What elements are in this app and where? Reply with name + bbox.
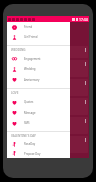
staticText: Friend: [24, 25, 33, 29]
staticText: because of who: [10, 67, 35, 72]
staticText: Anniversary: [24, 78, 40, 82]
staticText: Love is friendship: [10, 48, 38, 53]
staticText: VALENTINE'S DAY: [11, 134, 36, 138]
staticText: Engagement: [24, 57, 41, 61]
button[interactable]: Engagement: [7, 53, 70, 64]
staticText: SMS: [24, 121, 30, 125]
button[interactable]: Message: [7, 107, 70, 118]
staticText: like love, but: [10, 143, 31, 148]
staticText: in love when: [10, 86, 30, 91]
button[interactable]: Love is friendship: [8, 46, 88, 58]
button[interactable]: I still feel your: [8, 98, 88, 115]
staticText: 17:34: [79, 17, 88, 22]
staticText: I wish you: [10, 119, 27, 124]
button[interactable]: Girl Friend: [7, 32, 70, 42]
staticText: happiness: [10, 124, 27, 129]
button[interactable]: I wish you: [8, 117, 88, 134]
button[interactable]: RoseDay: [7, 139, 70, 149]
staticText: I still feel your: [10, 100, 33, 105]
staticText: LOVE: [11, 91, 19, 95]
staticText: Message: [24, 111, 36, 115]
staticText: Wedding: [24, 67, 36, 71]
staticText: Propose Day: [24, 152, 41, 156]
button[interactable]: Propose Day: [7, 149, 70, 158]
staticText: Quotes: [24, 100, 34, 104]
staticText: You know you're: [10, 81, 36, 86]
button[interactable]: There is no fabric: [8, 136, 88, 153]
staticText: that has caught: [10, 53, 35, 58]
button[interactable]: You know you're: [8, 79, 88, 96]
button[interactable]: I love you not: [8, 60, 88, 77]
staticText: RoseDay: [24, 142, 36, 146]
button[interactable]: Wedding: [7, 64, 70, 74]
staticText: There is no fabric: [10, 138, 38, 143]
staticText: WEDDING: [11, 48, 26, 52]
staticText: Girl Friend: [24, 35, 38, 39]
staticText: cheek: [10, 110, 20, 115]
button[interactable]: Friend: [7, 22, 70, 32]
button[interactable]: Anniversary: [7, 74, 70, 85]
button[interactable]: Quotes: [7, 97, 70, 107]
button[interactable]: SMS: [7, 118, 70, 128]
